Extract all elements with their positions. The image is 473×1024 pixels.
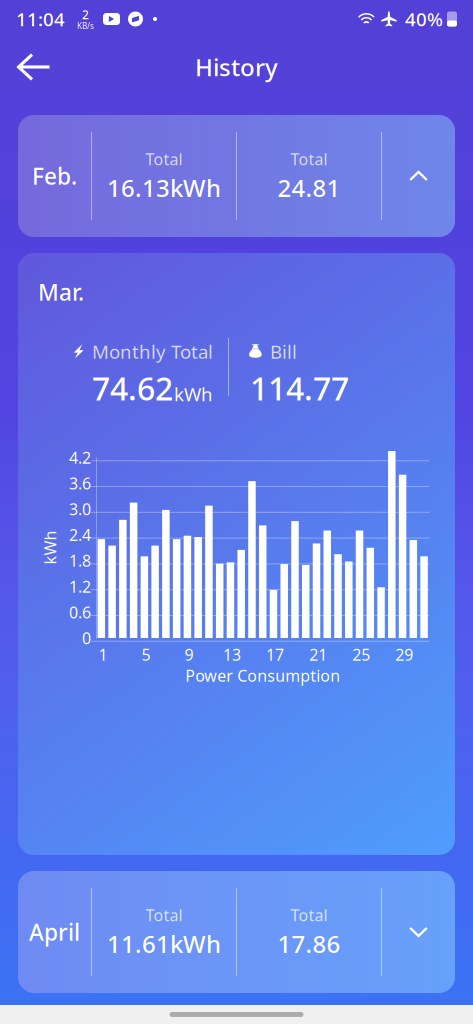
staticText: 3.6 [69, 473, 91, 494]
staticText: Total [290, 904, 327, 926]
staticText: 21 [309, 644, 327, 665]
button[interactable]: April [18, 871, 455, 993]
staticText: 24.81 [277, 172, 340, 204]
staticText: KB/s [77, 21, 94, 31]
staticText: 11.61kWh [107, 928, 221, 960]
staticText: 1 [98, 644, 107, 665]
staticText: Bill [270, 339, 297, 364]
staticText: Total [145, 148, 182, 170]
staticText: Power Consumption [185, 665, 340, 686]
staticText: 114.77 [250, 367, 349, 409]
staticText: Total [145, 904, 182, 926]
staticText: 11:04 [16, 7, 65, 31]
button[interactable]: Back [0, 44, 64, 90]
staticText: 2 [82, 7, 89, 23]
staticText: Total [290, 148, 327, 170]
staticText: Mar. [38, 277, 84, 307]
staticText: 2.4 [69, 524, 91, 545]
staticText: 1.2 [69, 576, 91, 597]
staticText: April [29, 917, 80, 947]
staticText: History [195, 51, 278, 83]
staticText: 1.8 [69, 550, 91, 571]
staticText: 13 [223, 644, 241, 665]
staticText: Monthly Total [92, 339, 213, 364]
staticText: 74.62 [92, 367, 173, 409]
staticText: 0.6 [69, 602, 91, 623]
staticText: Feb. [32, 161, 77, 191]
staticText: 3.0 [69, 498, 91, 520]
staticText: 40% [405, 7, 443, 31]
staticText: 29 [395, 644, 413, 665]
staticText: 5 [141, 644, 150, 665]
staticText: 17 [266, 644, 284, 665]
staticText: 16.13kWh [107, 172, 221, 204]
staticText: 0 [82, 627, 91, 649]
staticText: kWh [174, 381, 213, 406]
staticText: 17.86 [277, 928, 340, 960]
staticText: 9 [184, 644, 193, 665]
staticText: kWh [33, 537, 67, 558]
staticText: 4.2 [69, 447, 91, 468]
button[interactable]: Feb. [18, 115, 455, 237]
staticText: 25 [352, 644, 370, 665]
